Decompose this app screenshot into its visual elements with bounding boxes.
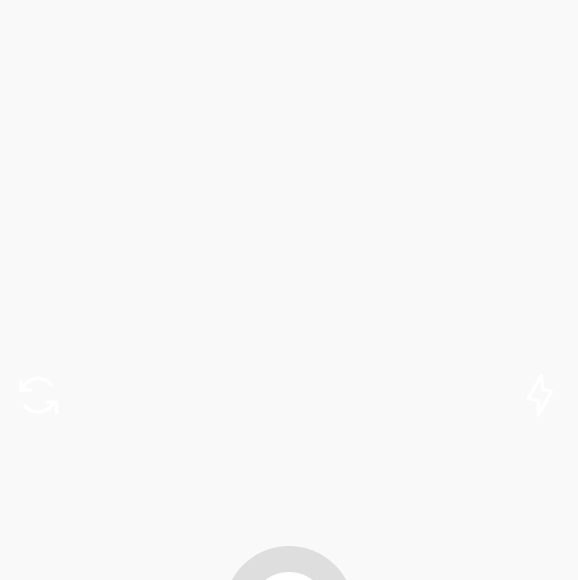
button[interactable]: Take Photo (224, 546, 354, 580)
